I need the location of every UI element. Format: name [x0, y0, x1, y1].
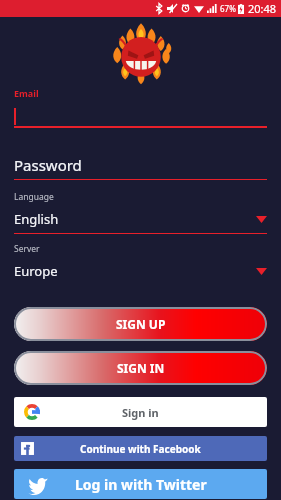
staticText: SIGN IN	[117, 360, 165, 376]
button[interactable]: SIGN IN	[14, 351, 267, 385]
button[interactable]: Language	[14, 191, 267, 234]
staticText: 67%	[220, 3, 236, 14]
staticText: Sign in	[122, 405, 159, 420]
button[interactable]: Facebook	[14, 436, 267, 461]
button[interactable]: Server	[14, 243, 267, 285]
staticText: Password	[14, 155, 82, 175]
other: Facebook	[19, 440, 36, 457]
button[interactable]: Password	[14, 154, 267, 176]
staticText: Log in with Twitter	[75, 475, 207, 494]
staticText: Email	[14, 87, 39, 99]
button[interactable]: Twitter	[14, 469, 267, 499]
staticText: Server	[14, 243, 40, 255]
staticText: SIGN UP	[116, 316, 166, 332]
other: Google	[24, 404, 40, 420]
staticText: English	[14, 210, 59, 228]
staticText: Europe	[14, 262, 58, 280]
other: Twitter	[28, 474, 48, 494]
staticText: Continue with Facebook	[80, 442, 201, 456]
button[interactable]: Google	[14, 397, 267, 427]
button[interactable]	[14, 106, 267, 126]
staticText: 20:48	[248, 1, 277, 16]
staticText: Language	[14, 191, 54, 203]
button[interactable]: SIGN UP	[14, 307, 267, 341]
